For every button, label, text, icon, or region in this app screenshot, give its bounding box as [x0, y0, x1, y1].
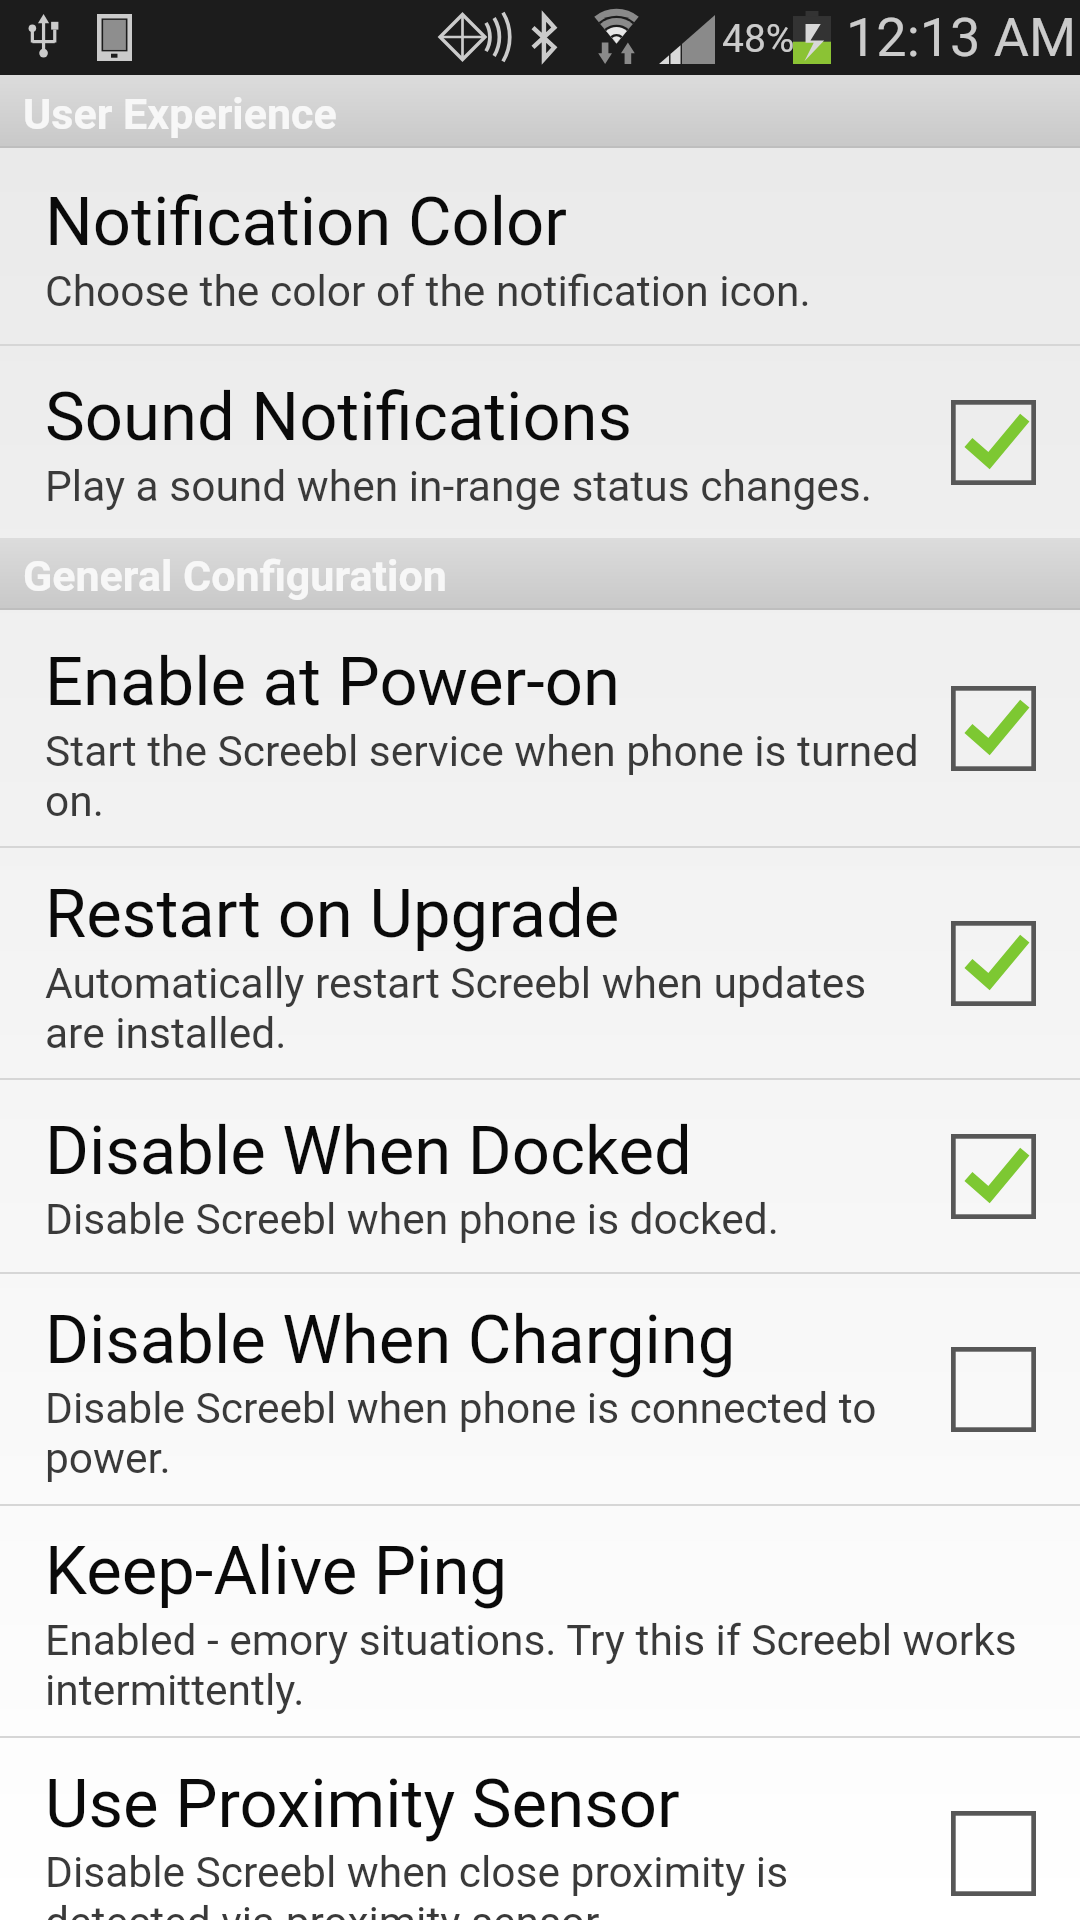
staticText: Start the Screebl service when phone is … [45, 727, 919, 826]
staticText: 48% [722, 16, 795, 62]
staticText: Restart on Upgrade [45, 875, 620, 954]
staticText: Disable Screebl when close proximity is … [45, 1848, 789, 1920]
staticText: Disable When Charging [45, 1301, 736, 1380]
staticText: Use Proximity Sensor [45, 1765, 680, 1844]
staticText: Keep-Alive Ping [45, 1532, 508, 1611]
staticText: Disable When Docked [45, 1112, 692, 1191]
button[interactable]: Enabled checkbox [907, 346, 1080, 539]
button[interactable]: Notification Color [0, 148, 1080, 344]
staticText: Play a sound when in-range status change… [45, 462, 872, 512]
button[interactable]: User Experience [0, 75, 1080, 148]
button[interactable]: Keep-Alive Ping [0, 1506, 1080, 1736]
button[interactable]: Enabled checkbox [907, 848, 1080, 1078]
button[interactable]: Disable When Docked [0, 1080, 1080, 1272]
button[interactable]: Disable When Charging [0, 1274, 1080, 1504]
staticText: Enabled - emory situations. Try this if … [45, 1616, 1017, 1715]
button[interactable]: Sound Notifications [0, 346, 1080, 539]
staticText: 12:13 AM [846, 6, 1077, 69]
staticText: Disable Screebl when phone is docked. [45, 1195, 779, 1245]
button[interactable]: Enabled checkbox [907, 1080, 1080, 1272]
staticText: Disable Screebl when phone is connected … [45, 1384, 877, 1483]
button[interactable]: General Configuration [0, 538, 1080, 610]
staticText: General Configuration [23, 551, 447, 601]
staticText: User Experience [23, 89, 337, 139]
staticText: Enable at Power-on [45, 643, 620, 722]
button[interactable]: Enable at Power-on [0, 610, 1080, 846]
staticText: Choose the color of the notification ico… [45, 267, 811, 317]
button[interactable]: Enabled checkbox [907, 610, 1080, 846]
button[interactable]: Use Proximity Sensor [0, 1738, 1080, 1920]
button[interactable]: Disabled checkbox [907, 1738, 1080, 1920]
button[interactable]: Restart on Upgrade [0, 848, 1080, 1078]
button[interactable]: Disabled checkbox [907, 1274, 1080, 1504]
staticText: Notification Color [45, 183, 567, 262]
staticText: Automatically restart Screebl when updat… [45, 959, 867, 1058]
staticText: Sound Notifications [45, 378, 633, 457]
